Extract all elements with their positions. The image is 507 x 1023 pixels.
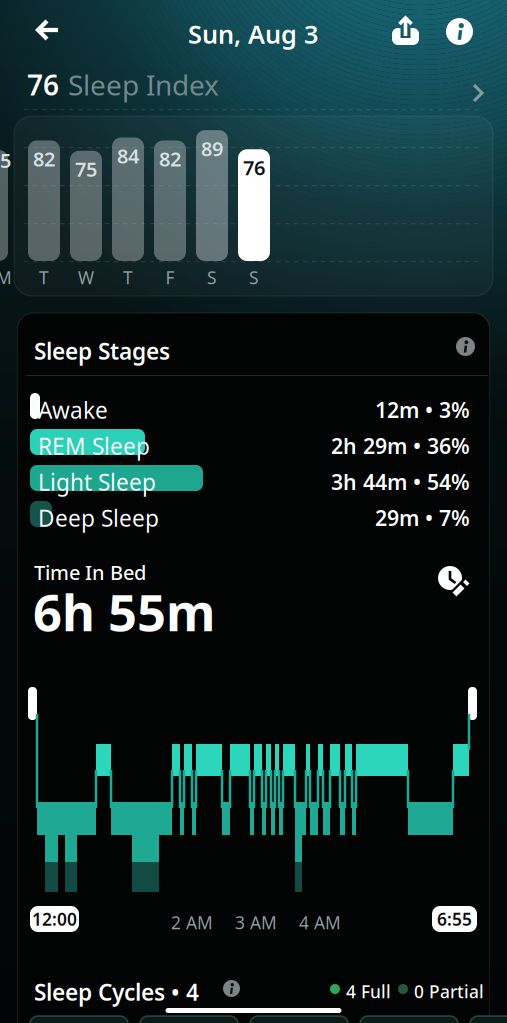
button[interactable]: 76 bbox=[0, 0, 507, 115]
staticText: Awake bbox=[38, 395, 108, 425]
button[interactable]: Info bbox=[440, 12, 479, 51]
staticText: 4 AM bbox=[299, 911, 341, 934]
staticText: 3 AM bbox=[235, 911, 277, 934]
staticText: REM Sleep bbox=[38, 431, 150, 461]
button[interactable]: End time 6:55 bbox=[432, 906, 477, 932]
staticText: 12:00 bbox=[32, 907, 77, 930]
staticText: T bbox=[39, 266, 49, 289]
staticText: 76 bbox=[243, 154, 265, 181]
button[interactable]: Start time 12:00 bbox=[30, 906, 79, 932]
staticText: S bbox=[249, 266, 259, 289]
staticText: Sleep Stages bbox=[34, 336, 170, 366]
staticText: 2h 29m • 36% bbox=[331, 431, 470, 460]
staticText: 6h 55m bbox=[33, 578, 215, 645]
staticText: S bbox=[207, 266, 217, 289]
staticText: 3h 44m • 54% bbox=[331, 467, 470, 496]
button[interactable]: Sleep Stages info bbox=[450, 331, 481, 362]
staticText: F bbox=[165, 266, 174, 289]
button[interactable]: T score 84 bbox=[112, 137, 144, 261]
staticText: 29m • 7% bbox=[375, 503, 470, 532]
staticText: W bbox=[78, 266, 94, 289]
staticText: 84 bbox=[117, 142, 139, 169]
staticText: 5 bbox=[0, 147, 11, 174]
button[interactable]: Share bbox=[384, 7, 427, 54]
staticText: 82 bbox=[159, 145, 181, 172]
staticText: 0 Partial bbox=[414, 980, 484, 1003]
staticText: Time In Bed bbox=[34, 559, 146, 586]
staticText: 82 bbox=[33, 145, 55, 172]
staticText: T bbox=[123, 266, 133, 289]
button[interactable]: T score 82 bbox=[28, 140, 60, 261]
staticText: Sleep Cycles • 4 bbox=[34, 977, 199, 1007]
staticText: M bbox=[0, 266, 12, 289]
button[interactable]: S score 76 bbox=[238, 149, 270, 261]
staticText: 89 bbox=[201, 135, 223, 162]
staticText: 12m • 3% bbox=[375, 395, 470, 424]
staticText: 76 bbox=[27, 66, 59, 103]
button[interactable]: S score 89 bbox=[196, 130, 228, 261]
staticText: Sun, Aug 3 bbox=[188, 17, 318, 51]
staticText: Deep Sleep bbox=[38, 503, 159, 533]
staticText: Sleep Index bbox=[68, 66, 219, 103]
staticText: 2 AM bbox=[171, 911, 213, 934]
button[interactable]: F score 82 bbox=[154, 140, 186, 261]
button[interactable]: Back bbox=[0, 0, 70, 60]
button[interactable]: W score 75 bbox=[70, 151, 102, 261]
staticText: Light Sleep bbox=[38, 467, 156, 497]
button[interactable]: Sleep Cycles info bbox=[218, 975, 245, 1002]
staticText: 75 bbox=[75, 156, 97, 182]
staticText: 4 Full bbox=[346, 980, 391, 1003]
staticText: 6:55 bbox=[437, 907, 472, 930]
button[interactable]: Edit time in bed bbox=[436, 564, 474, 602]
